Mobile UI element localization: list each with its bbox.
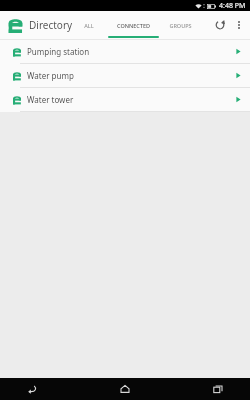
button[interactable]: CONNECTED xyxy=(106,11,160,39)
button[interactable]: Directory xyxy=(0,11,73,39)
other: Open Pumping station xyxy=(235,48,242,55)
staticText: GROUPS xyxy=(169,22,192,29)
button[interactable]: Back xyxy=(20,378,44,400)
button[interactable]: Pumping station xyxy=(0,40,250,63)
button[interactable]: Water tower xyxy=(0,88,250,111)
staticText: Directory xyxy=(29,18,73,32)
staticText: Water tower xyxy=(27,94,74,105)
button[interactable]: More options xyxy=(230,16,248,34)
other: Open Water pump xyxy=(235,72,242,79)
button[interactable]: Water pump xyxy=(0,64,250,87)
staticText: CONNECTED xyxy=(117,22,150,29)
staticText: Water pump xyxy=(27,70,74,81)
staticText: 4:48 PM xyxy=(219,1,246,11)
button[interactable]: Home xyxy=(113,378,137,400)
staticText: Pumping station xyxy=(27,46,90,57)
staticText: ALL xyxy=(84,22,94,29)
other: Open Water tower xyxy=(235,96,242,103)
button[interactable]: ALL xyxy=(72,11,106,39)
button[interactable]: Recent apps xyxy=(206,378,230,400)
button[interactable]: GROUPS xyxy=(160,11,200,39)
button[interactable]: Refresh xyxy=(210,15,230,35)
